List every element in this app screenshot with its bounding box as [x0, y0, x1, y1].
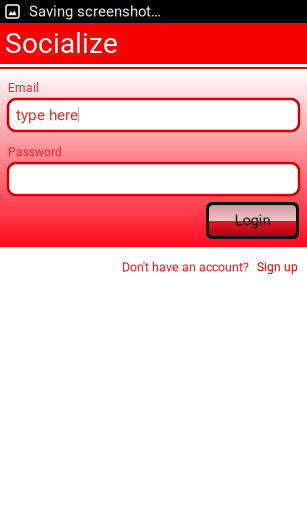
staticText: Email — [8, 81, 39, 95]
staticText: Password — [8, 145, 62, 159]
staticText: Saving screenshot… — [29, 3, 161, 20]
button[interactable]: Login — [206, 202, 299, 239]
button[interactable]: Don't have an account? — [122, 260, 249, 274]
staticText: Sign up — [257, 260, 298, 274]
button[interactable]: Sign up — [257, 260, 298, 274]
staticText: Don't have an account? — [122, 260, 249, 274]
staticText: type here — [16, 106, 78, 124]
staticText: Socialize — [5, 27, 118, 60]
staticText: Login — [234, 212, 270, 229]
